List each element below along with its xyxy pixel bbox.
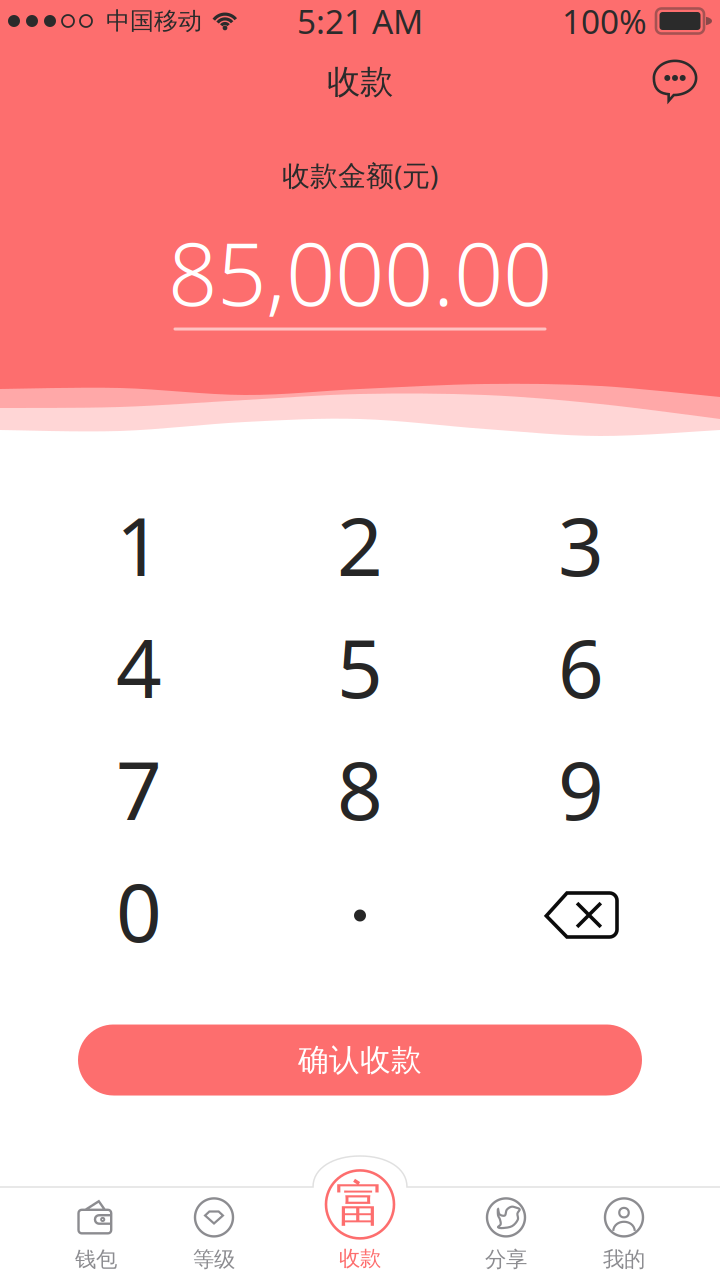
- button[interactable]: 钱包: [36, 1182, 156, 1276]
- staticText: 收款金额(元): [282, 156, 438, 194]
- button[interactable]: 2: [249, 484, 470, 606]
- button[interactable]: 9: [470, 728, 691, 850]
- staticText: 5:21 AM: [297, 0, 423, 43]
- button[interactable]: 3: [470, 484, 691, 606]
- button[interactable]: Delete: [470, 850, 691, 972]
- button[interactable]: 4: [28, 606, 249, 728]
- staticText: 钱包: [75, 1246, 117, 1273]
- staticText: 富: [335, 1174, 384, 1235]
- button[interactable]: 收款: [326, 1170, 394, 1272]
- staticText: 3: [558, 492, 604, 598]
- staticText: 收款: [327, 61, 393, 102]
- button[interactable]: 我的: [564, 1182, 684, 1276]
- button[interactable]: 5: [249, 606, 470, 728]
- staticText: 4: [116, 614, 162, 720]
- staticText: 0: [116, 858, 162, 964]
- staticText: 2: [337, 492, 383, 598]
- staticText: 100%: [562, 0, 647, 43]
- staticText: 9: [558, 736, 604, 842]
- staticText: 5: [337, 614, 383, 720]
- staticText: 6: [558, 614, 604, 720]
- staticText: 分享: [485, 1246, 527, 1273]
- staticText: 85,000.00: [168, 214, 552, 330]
- button[interactable]: More options: [653, 59, 697, 104]
- button[interactable]: Decimal point: [249, 850, 470, 972]
- staticText: 收款: [339, 1245, 381, 1272]
- button[interactable]: 0: [28, 850, 249, 972]
- button[interactable]: 8: [249, 728, 470, 850]
- staticText: 我的: [603, 1246, 645, 1273]
- staticText: 7: [116, 736, 162, 842]
- button[interactable]: 7: [28, 728, 249, 850]
- staticText: 中国移动: [106, 6, 202, 36]
- button[interactable]: 1: [28, 484, 249, 606]
- staticText: 8: [337, 736, 383, 842]
- staticText: 等级: [193, 1246, 235, 1273]
- staticText: 确认收款: [298, 1041, 422, 1079]
- button[interactable]: 确认收款: [78, 1024, 642, 1095]
- button[interactable]: 6: [470, 606, 691, 728]
- button[interactable]: 等级: [154, 1182, 274, 1276]
- button[interactable]: 分享: [446, 1182, 566, 1276]
- staticText: 1: [116, 492, 162, 598]
